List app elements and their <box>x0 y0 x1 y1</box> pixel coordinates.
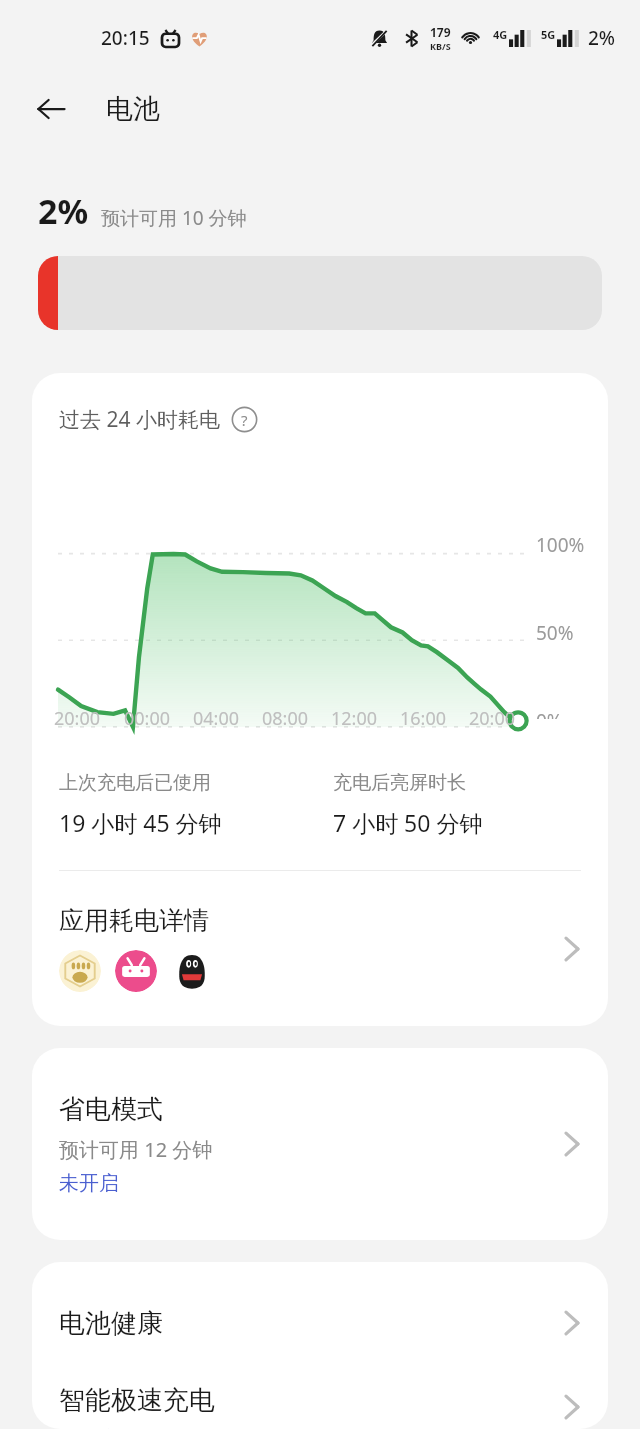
staticText: 04:00 <box>193 706 262 731</box>
button[interactable]: 省电模式 <box>32 1048 608 1240</box>
staticText: 未开启 <box>59 1171 119 1196</box>
staticText: ? <box>241 410 248 430</box>
staticText: 电池健康 <box>59 1307 163 1340</box>
staticText: 过去 24 小时耗电 <box>59 405 220 434</box>
staticText: 4G <box>493 27 508 42</box>
staticText: 预计可用 10 分钟 <box>101 205 247 231</box>
staticText: 2% <box>588 25 616 51</box>
staticText: 20:00 <box>54 706 124 731</box>
staticText: 20:00 <box>469 706 538 731</box>
staticText: KB/S <box>430 40 451 52</box>
button[interactable]: Back <box>26 84 76 134</box>
staticText: 12:00 <box>331 706 400 731</box>
button[interactable]: 应用耗电详情 <box>32 871 608 1026</box>
button[interactable]: Help <box>231 406 258 433</box>
staticText: 电池 <box>106 92 160 126</box>
staticText: 50% <box>536 620 574 646</box>
staticText: 2% <box>38 188 89 234</box>
staticText: 19 小时 45 分钟 <box>59 807 222 838</box>
staticText: 00:00 <box>124 706 193 731</box>
staticText: 智能极速充电 <box>59 1384 215 1417</box>
staticText: 7 小时 50 分钟 <box>333 807 483 838</box>
staticText: 100% <box>536 532 585 558</box>
staticText: 上次充电后已使用 <box>59 771 211 795</box>
staticText: 16:00 <box>400 706 469 731</box>
staticText: 充电后亮屏时长 <box>333 771 466 795</box>
staticText: 预计可用 12 分钟 <box>59 1136 213 1163</box>
staticText: 179 <box>430 24 451 40</box>
staticText: 20:15 <box>101 25 150 51</box>
button[interactable]: 电池健康 <box>32 1262 608 1384</box>
button[interactable]: 智能极速充电 <box>32 1384 608 1429</box>
staticText: 应用耗电详情 <box>59 905 209 936</box>
staticText: 0% <box>536 708 563 719</box>
staticText: 5G <box>541 27 556 42</box>
staticText: 省电模式 <box>59 1093 163 1126</box>
staticText: 08:00 <box>262 706 331 731</box>
